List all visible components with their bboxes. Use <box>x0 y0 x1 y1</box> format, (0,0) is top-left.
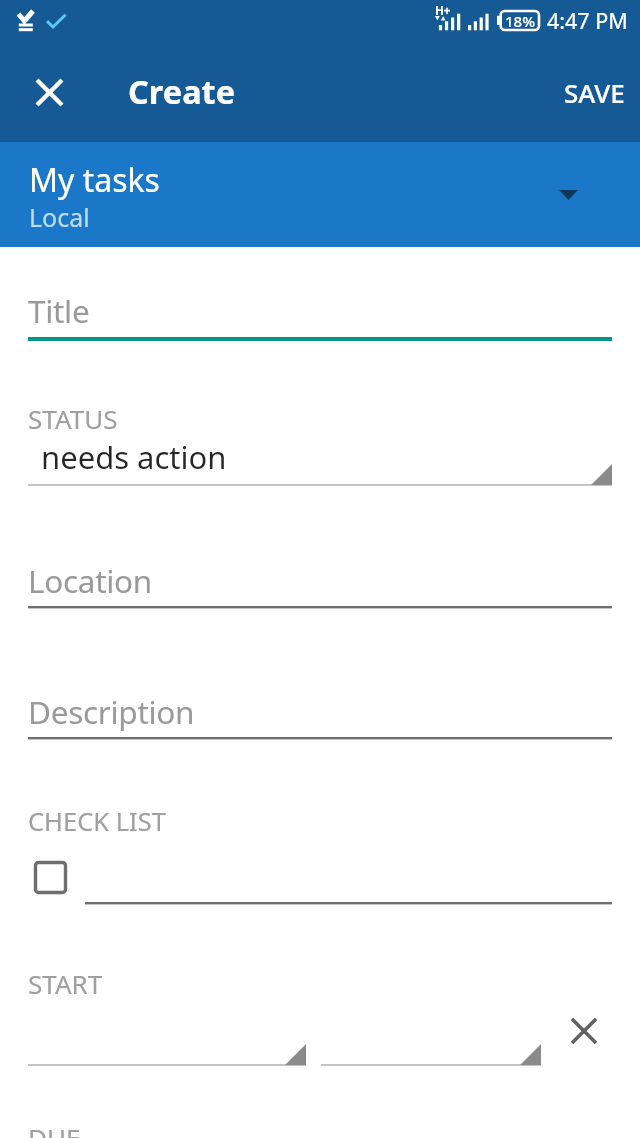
staticText: 4:47 PM <box>547 6 628 35</box>
button[interactable]: Description <box>28 682 612 744</box>
staticText: Description <box>28 690 195 733</box>
staticText: CHECK LIST <box>28 804 166 839</box>
button[interactable]: My tasks <box>0 142 640 247</box>
staticText: H+ <box>435 3 451 19</box>
button[interactable]: Check list item text <box>85 875 612 905</box>
button[interactable]: Close <box>14 57 84 127</box>
button[interactable]: Title <box>28 280 612 345</box>
staticText: SAVE <box>564 75 625 110</box>
staticText: START <box>28 966 103 1001</box>
staticText: Create <box>128 69 236 113</box>
staticText: Title <box>28 289 90 332</box>
button[interactable]: needs action <box>28 437 612 487</box>
staticText: My tasks <box>29 158 160 202</box>
button[interactable]: Location <box>28 551 612 613</box>
button[interactable]: Start date <box>28 1020 306 1066</box>
staticText: DUE <box>28 1120 81 1138</box>
staticText: needs action <box>41 436 227 478</box>
button[interactable]: Check list item, not done <box>34 861 67 894</box>
button[interactable]: Start time <box>321 1020 541 1066</box>
button[interactable]: Clear start date <box>559 1006 608 1055</box>
staticText: Local <box>29 200 90 234</box>
staticText: 18% <box>505 11 535 30</box>
button[interactable]: SAVE <box>555 61 640 123</box>
staticText: STATUS <box>28 401 118 436</box>
staticText: Location <box>28 559 152 602</box>
